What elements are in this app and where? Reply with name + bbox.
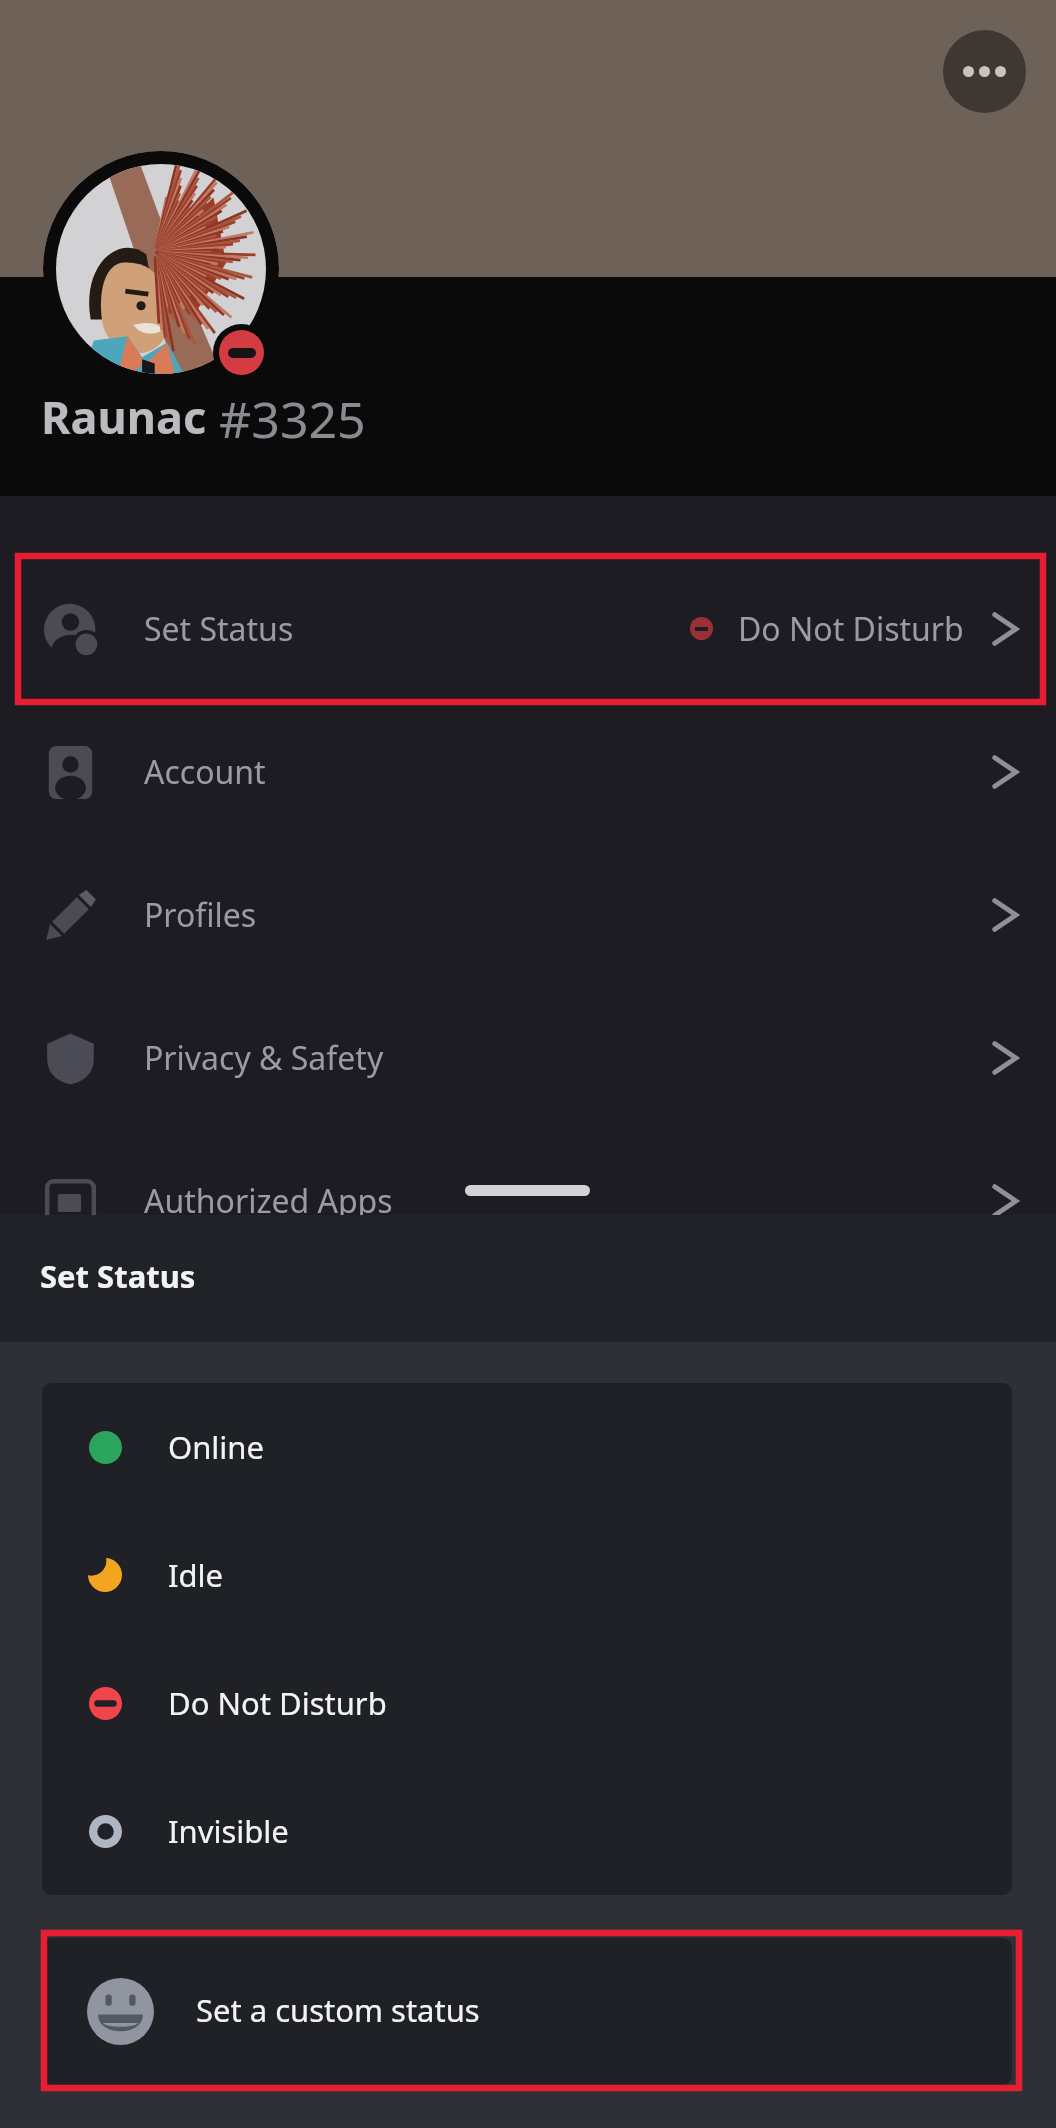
- staticText: Account: [144, 750, 266, 794]
- button[interactable]: Authorized Apps: [0, 1129, 1056, 1272]
- staticText: Profiles: [144, 893, 257, 937]
- button[interactable]: Invisible: [42, 1767, 1012, 1895]
- staticText: Privacy & Safety: [144, 1036, 384, 1080]
- button[interactable]: More options: [943, 30, 1026, 113]
- staticText: Do Not Disturb: [738, 607, 964, 651]
- button[interactable]: Privacy & Safety: [0, 986, 1056, 1129]
- button[interactable]: Do Not Disturb: [42, 1639, 1012, 1767]
- staticText: #3325: [219, 385, 366, 453]
- staticText: Do Not Disturb: [168, 1682, 387, 1724]
- staticText: Set Status: [144, 607, 294, 651]
- staticText: Set a custom status: [196, 1989, 480, 2031]
- staticText: Authorized Apps: [144, 1179, 393, 1223]
- button[interactable]: Set a custom status: [42, 1938, 1012, 2085]
- button[interactable]: Idle: [42, 1511, 1012, 1639]
- staticText: Online: [168, 1426, 265, 1468]
- button[interactable]: Account: [0, 700, 1056, 843]
- staticText: Raunac: [41, 386, 207, 447]
- button[interactable]: Profile picture: [43, 151, 279, 387]
- staticText: Set Status: [40, 1255, 196, 1297]
- staticText: Idle: [168, 1554, 224, 1596]
- staticText: Invisible: [168, 1810, 289, 1852]
- button[interactable]: Online: [42, 1383, 1012, 1511]
- button[interactable]: Set Status: [0, 557, 1056, 700]
- button[interactable]: Profiles: [0, 843, 1056, 986]
